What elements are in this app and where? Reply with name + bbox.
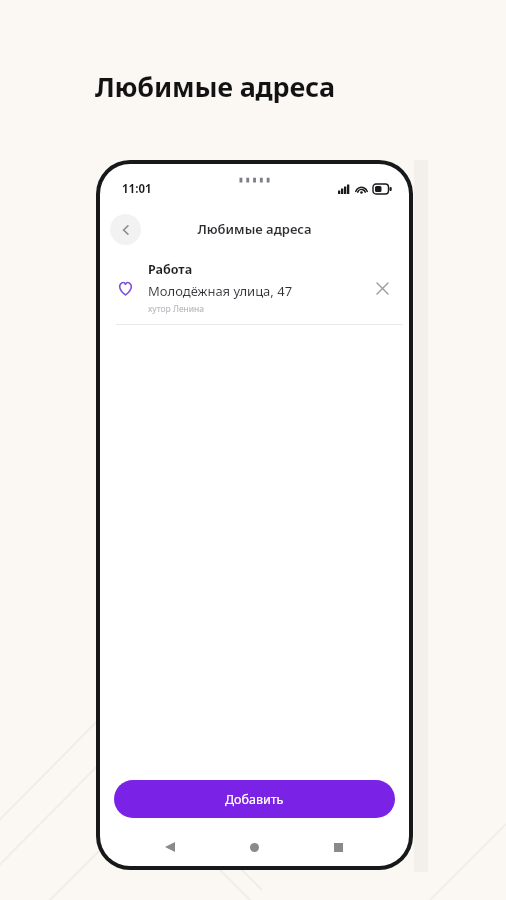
button[interactable]: Главный экран (241, 834, 267, 860)
staticText: 11:01 (122, 181, 152, 197)
staticText: Добавить (225, 791, 284, 808)
staticText: Любимые адреса (95, 68, 335, 105)
button[interactable]: Последние приложения (325, 834, 351, 860)
staticText: Молодёжная улица, 47 (148, 282, 293, 300)
button[interactable]: Назад (157, 834, 183, 860)
button[interactable]: Назад (110, 214, 141, 245)
staticText: хутор Ленина (148, 303, 205, 315)
staticText: Работа (148, 261, 193, 278)
button[interactable]: Работа (100, 252, 409, 324)
button[interactable]: Удалить адрес (369, 275, 395, 301)
staticText: Любимые адреса (197, 220, 312, 238)
button[interactable]: Добавить (114, 780, 395, 818)
